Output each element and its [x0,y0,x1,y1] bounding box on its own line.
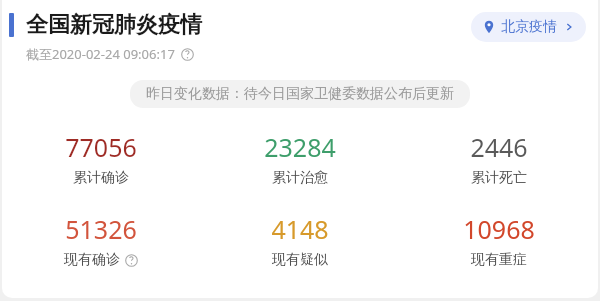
staticText: 累计死亡 [471,169,527,187]
staticText: 77056 [65,130,137,164]
button[interactable]: 51326 [2,212,200,269]
staticText: 现有疑似 [272,251,328,269]
staticText: 现有重症 [471,251,527,269]
staticText: 累计治愈 [272,169,328,187]
button[interactable]: 10968 [399,212,598,269]
staticText: 昨日变化数据：待今日国家卫健委数据公布后更新 [146,85,454,103]
button[interactable]: 4148 [200,212,399,269]
staticText: 10968 [463,212,535,246]
staticText: 截至2020-02-24 09:06:17 [26,45,175,63]
staticText: 全国新冠肺炎疫情 [26,11,202,39]
staticText: 51326 [65,212,137,246]
button[interactable]: 23284 [200,130,399,187]
button[interactable]: 昨日变化数据：待今日国家卫健委数据公布后更新 [130,80,470,108]
staticText: 现有确诊 [64,251,120,269]
staticText: 累计确诊 [73,169,129,187]
staticText: 4148 [271,212,329,246]
button[interactable]: 北京疫情 [471,12,586,42]
button[interactable]: 2446 [399,130,598,187]
staticText: 2446 [470,130,528,164]
staticText: 23284 [264,130,336,164]
staticText: 北京疫情 [501,18,557,36]
button[interactable]: 77056 [2,130,200,187]
